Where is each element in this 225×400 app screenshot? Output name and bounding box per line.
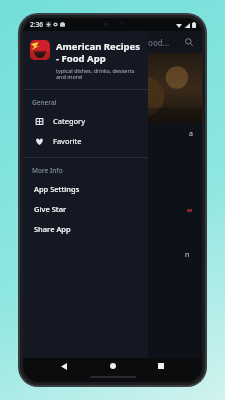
staticText: ood... <box>148 37 170 48</box>
staticText: More Info <box>32 166 63 175</box>
button[interactable]: Share App <box>23 219 148 239</box>
button[interactable]: Category <box>23 111 148 131</box>
staticText: a <box>189 129 193 139</box>
staticText: n <box>185 250 190 260</box>
staticText: typical dishes, drinks, desserts and mor… <box>56 67 142 81</box>
button[interactable]: Give Star <box>23 199 148 219</box>
staticText: App Settings <box>34 184 80 194</box>
staticText: Give Star <box>34 204 67 214</box>
staticText: Share App <box>34 224 71 234</box>
staticText: American Recipes - Food App <box>56 40 142 65</box>
button[interactable]: Back <box>56 358 72 374</box>
button[interactable]: Favorite <box>23 131 148 151</box>
staticText: 2:36 <box>30 20 43 29</box>
staticText: General <box>32 98 57 107</box>
button[interactable]: Home <box>105 358 121 374</box>
button[interactable]: App Settings <box>23 179 148 199</box>
staticText: Favorite <box>53 136 82 146</box>
staticText: Category <box>53 116 85 126</box>
button[interactable]: Search <box>182 35 196 49</box>
button[interactable]: Recent apps <box>153 358 169 374</box>
